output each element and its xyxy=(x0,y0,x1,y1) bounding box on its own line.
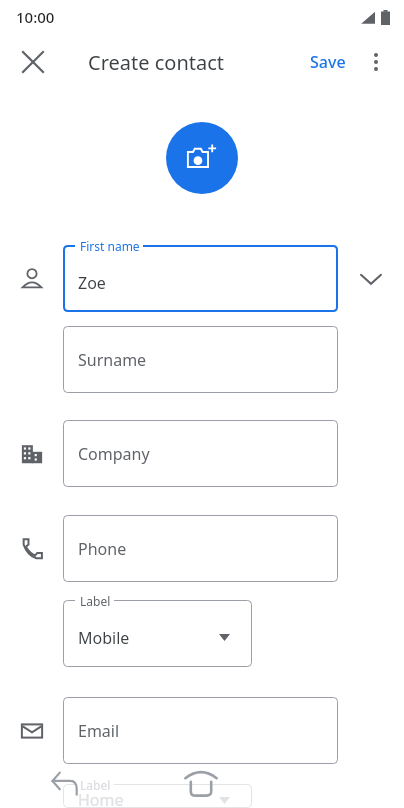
button[interactable]: First name xyxy=(63,245,338,312)
staticText: Save xyxy=(310,51,346,73)
staticText: Email xyxy=(78,720,120,742)
button[interactable]: Home xyxy=(179,761,223,805)
button[interactable]: Expand name fields xyxy=(349,257,393,301)
button[interactable]: Save xyxy=(302,43,354,81)
button[interactable]: Company xyxy=(63,420,338,487)
button[interactable]: Surname xyxy=(63,326,338,393)
button[interactable]: Label xyxy=(63,600,252,667)
staticText: 10:00 xyxy=(16,7,55,27)
staticText: Label xyxy=(80,593,111,609)
staticText: Company xyxy=(78,443,150,465)
staticText: Phone xyxy=(78,538,127,560)
button[interactable]: Label xyxy=(63,784,252,808)
staticText: Create contact xyxy=(88,49,225,76)
staticText: Mobile xyxy=(78,627,130,649)
staticText: Label xyxy=(80,777,111,793)
staticText: Surname xyxy=(78,349,147,371)
staticText: First name xyxy=(80,238,140,254)
button[interactable]: More options xyxy=(354,40,398,84)
button[interactable]: Phone xyxy=(63,515,338,582)
staticText: Zoe xyxy=(78,272,106,294)
button[interactable]: Add photo xyxy=(166,122,238,194)
button[interactable]: Close xyxy=(10,39,56,85)
button[interactable]: Back xyxy=(48,766,82,800)
button[interactable]: Email xyxy=(63,697,338,764)
staticText: Home xyxy=(78,789,124,808)
